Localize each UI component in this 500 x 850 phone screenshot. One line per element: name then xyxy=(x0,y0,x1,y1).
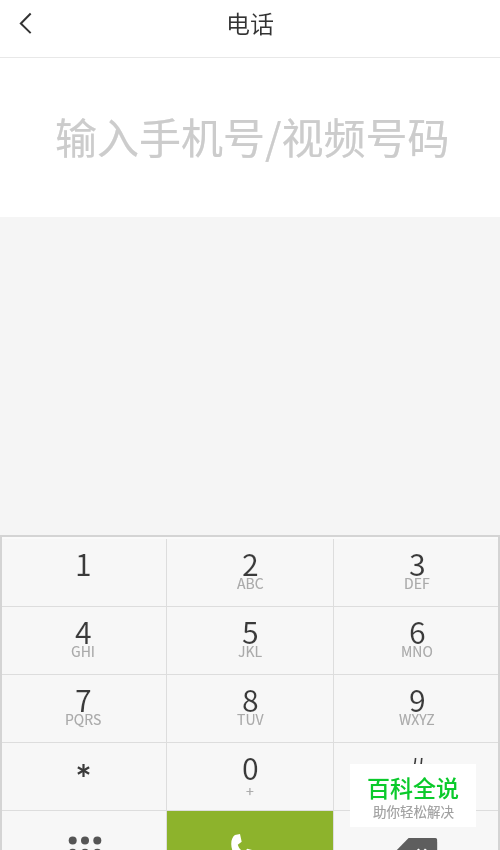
button[interactable]: 1 xyxy=(0,539,166,606)
staticText: WXYZ xyxy=(399,709,435,729)
staticText: 百科全说 xyxy=(367,770,459,803)
staticText: 7 xyxy=(75,677,92,720)
button[interactable]: # xyxy=(334,743,500,810)
staticText: DEF xyxy=(404,573,430,593)
button[interactable]: 3 xyxy=(334,539,500,606)
button[interactable]: Delete xyxy=(334,811,500,850)
staticText: GHI xyxy=(71,641,95,661)
button[interactable]: 6 xyxy=(334,607,500,674)
button[interactable]: Call xyxy=(167,811,333,850)
staticText: 9 xyxy=(409,677,426,720)
staticText: 输入手机号/视频号码 xyxy=(55,105,450,166)
button[interactable]: 2 xyxy=(167,539,333,606)
button[interactable]: 8 xyxy=(167,675,333,742)
button[interactable]: 4 xyxy=(0,607,166,674)
staticText: 2 xyxy=(242,541,259,584)
staticText: 电话 xyxy=(226,5,274,40)
button[interactable]: 5 xyxy=(167,607,333,674)
staticText: MNO xyxy=(401,641,433,661)
staticText: # xyxy=(409,745,426,788)
staticText: 6 xyxy=(409,609,426,652)
staticText: 4 xyxy=(75,609,92,652)
button[interactable]: Back xyxy=(0,0,52,57)
staticText: PQRS xyxy=(65,709,102,729)
staticText: 0 xyxy=(242,745,259,788)
staticText: 1 xyxy=(75,541,92,584)
button[interactable]: Hide keypad xyxy=(0,811,166,850)
staticText: + xyxy=(246,781,254,801)
staticText: ABC xyxy=(237,573,264,593)
staticText: 5 xyxy=(242,609,259,652)
button[interactable]: 9 xyxy=(334,675,500,742)
staticText: TUV xyxy=(237,709,264,729)
button[interactable]: 0 xyxy=(167,743,333,810)
button[interactable] xyxy=(0,743,166,810)
staticText: 助你轻松解决 xyxy=(373,801,454,821)
staticText: JKL xyxy=(238,641,263,661)
staticText: 8 xyxy=(242,677,259,720)
staticText: 3 xyxy=(409,541,426,584)
button[interactable]: 7 xyxy=(0,675,166,742)
